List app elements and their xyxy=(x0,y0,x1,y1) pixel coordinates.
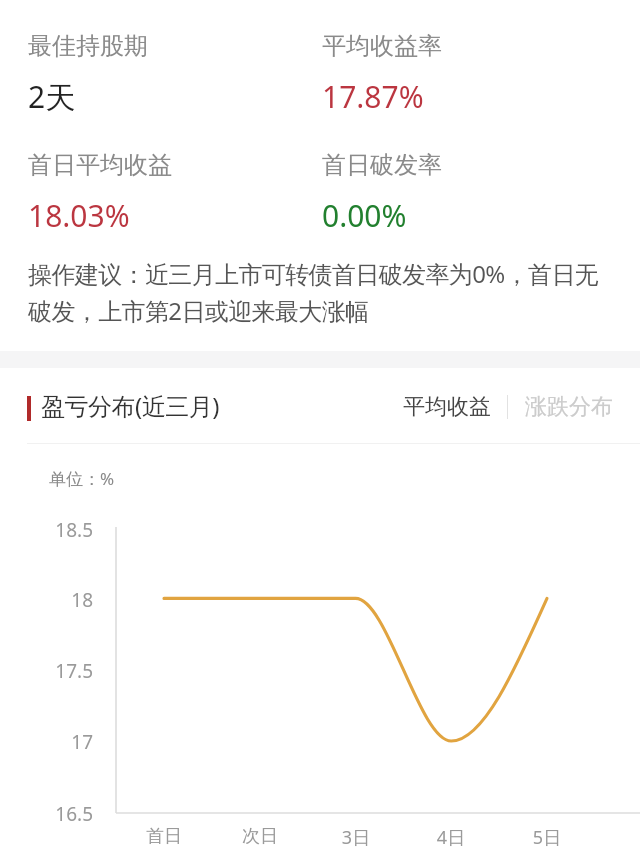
button[interactable]: 首日破发率 xyxy=(294,133,588,237)
staticText: 18.03% xyxy=(28,195,130,236)
staticText: 18 xyxy=(13,587,93,613)
button[interactable]: 涨跌分布 xyxy=(525,393,613,421)
staticText: 5日 xyxy=(497,825,597,850)
staticText: 盈亏分布(近三月) xyxy=(41,389,219,422)
staticText: 18.5 xyxy=(13,517,93,543)
staticText: 2天 xyxy=(28,76,76,117)
staticText: 操作建议：近三月上市可转债首日破发率为0%，首日无 破发，上市第2日或迎来最大涨… xyxy=(28,257,599,327)
staticText: 平均收益率 xyxy=(322,31,442,61)
button[interactable]: 平均收益率 xyxy=(294,14,588,118)
staticText: 单位：% xyxy=(49,467,115,490)
staticText: 17.5 xyxy=(13,658,93,684)
staticText: 最佳持股期 xyxy=(28,31,148,61)
staticText: 首日破发率 xyxy=(322,150,442,180)
staticText: 0.00% xyxy=(322,195,407,236)
staticText: 16.5 xyxy=(13,801,93,827)
staticText: 4日 xyxy=(401,825,501,850)
staticText: 平均收益 xyxy=(403,393,491,421)
staticText: 3日 xyxy=(306,825,406,850)
staticText: 首日 xyxy=(114,825,214,848)
staticText: 17.87% xyxy=(322,76,424,117)
staticText: 次日 xyxy=(210,825,310,848)
staticText: 17 xyxy=(13,729,93,755)
button[interactable]: 平均收益 xyxy=(403,393,491,421)
button[interactable]: 首日平均收益 xyxy=(0,133,294,237)
staticText: 首日平均收益 xyxy=(28,150,172,180)
button[interactable]: 最佳持股期 xyxy=(0,14,294,118)
other: 盈亏分布折线图 xyxy=(0,0,640,852)
staticText: 涨跌分布 xyxy=(525,393,613,421)
